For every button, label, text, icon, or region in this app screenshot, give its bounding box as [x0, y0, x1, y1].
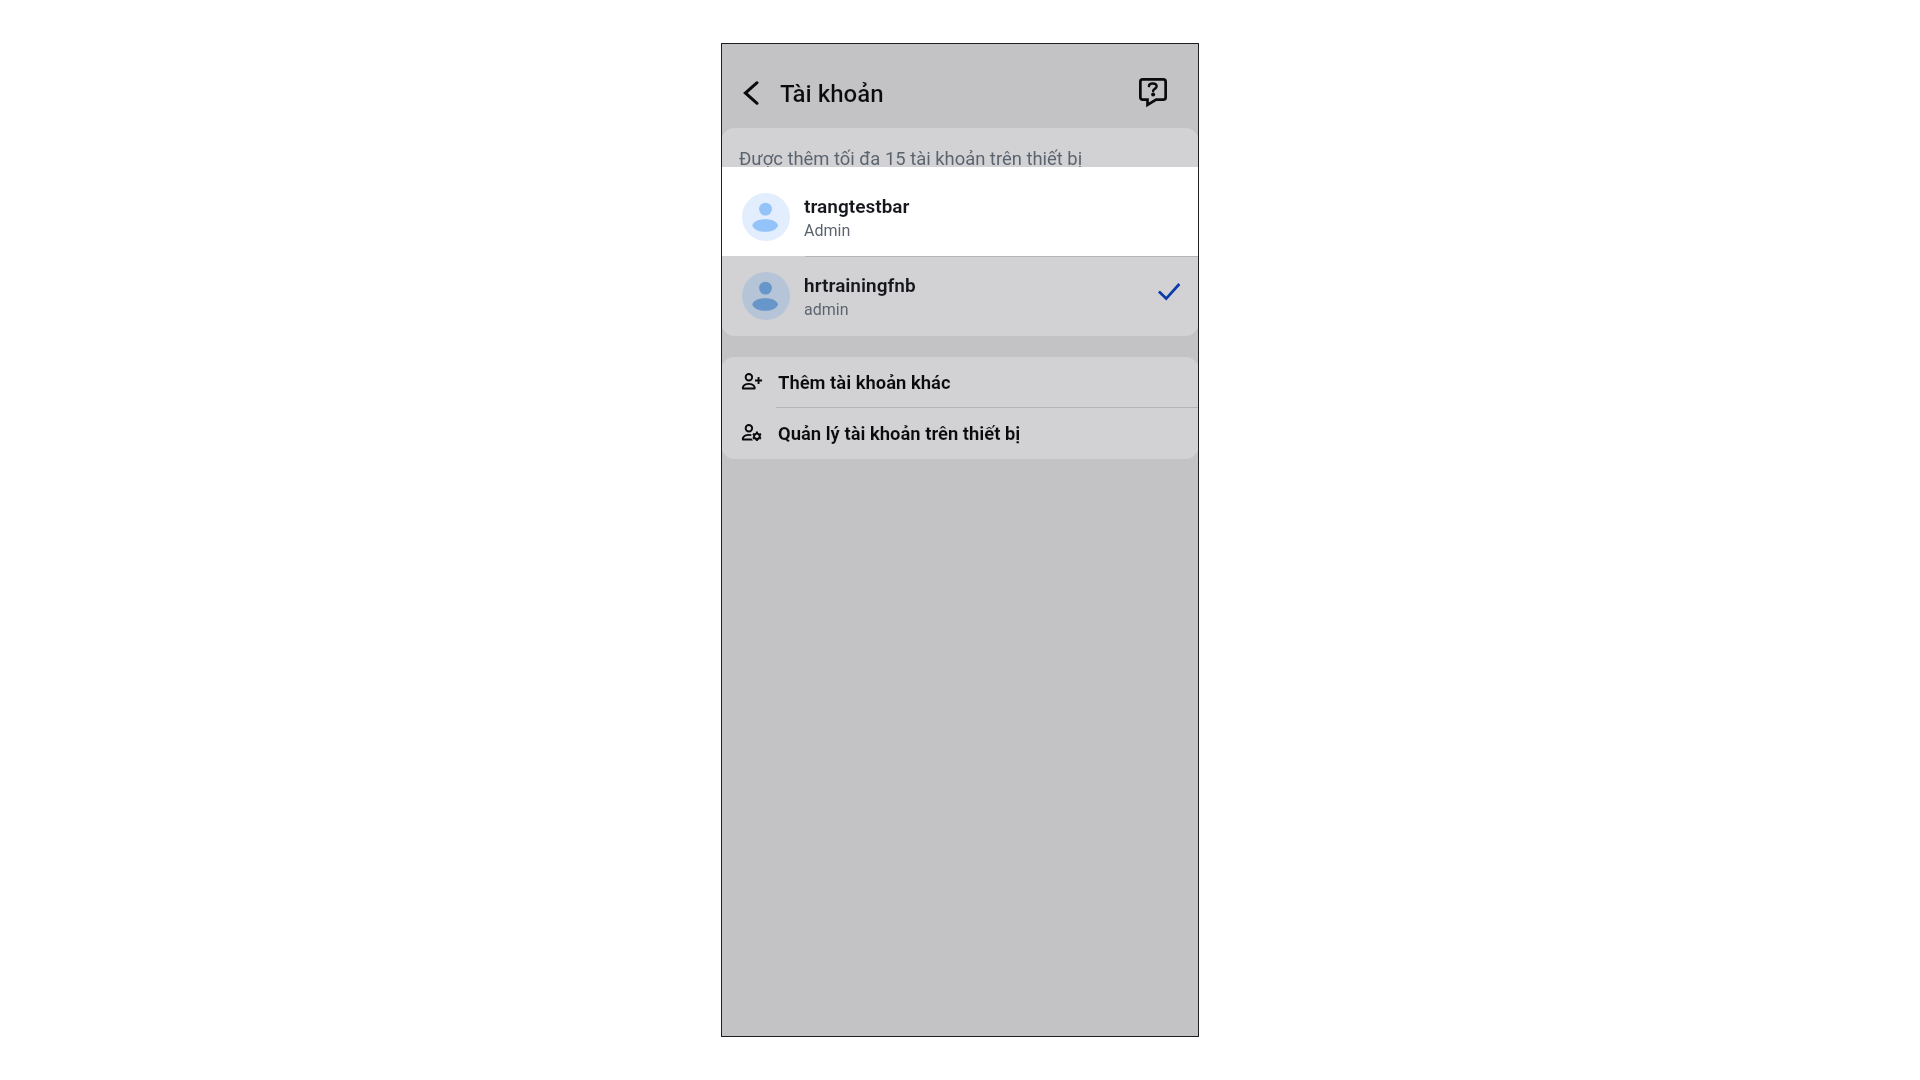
staticText: Tài khoản	[780, 80, 884, 108]
staticText: Quản lý tài khoản trên thiết bị	[778, 423, 1021, 445]
button[interactable]: trangtestbar	[721, 167, 1199, 256]
staticText: Thêm tài khoản khác	[778, 372, 951, 394]
button[interactable]: Help	[1117, 67, 1163, 113]
staticText: admin	[804, 300, 849, 319]
staticText: Được thêm tối đa 15 tài khoản trên thiết…	[739, 148, 1083, 170]
button[interactable]: Thêm tài khoản khác	[721, 357, 1199, 408]
button[interactable]: Quản lý tài khoản trên thiết bị	[721, 408, 1199, 459]
button[interactable]: Back	[737, 78, 767, 108]
staticText: hrtrainingfnb	[804, 274, 916, 296]
staticText: trangtestbar	[804, 195, 910, 217]
staticText: Admin	[804, 221, 851, 240]
button[interactable]: hrtrainingfnb	[721, 251, 1199, 330]
